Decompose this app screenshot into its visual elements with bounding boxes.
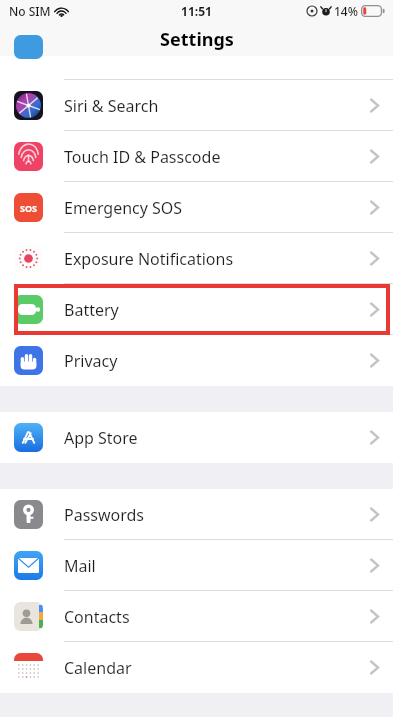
staticText: No SIM	[9, 3, 51, 19]
button[interactable]: Siri & Search	[0, 80, 393, 131]
button[interactable]: Touch ID & Passcode	[0, 131, 393, 182]
staticText: Battery	[64, 299, 370, 321]
button[interactable]: Calendar	[0, 642, 393, 693]
button[interactable]: Contacts	[0, 591, 393, 642]
button[interactable]: App Store	[0, 412, 393, 463]
staticText: Touch ID & Passcode	[64, 146, 370, 168]
button[interactable]: Passwords	[0, 489, 393, 540]
staticText: Mail	[64, 555, 370, 577]
staticText: Contacts	[64, 606, 370, 628]
staticText: Calendar	[64, 657, 370, 679]
button[interactable]: Privacy	[0, 335, 393, 386]
staticText: Passwords	[64, 504, 370, 526]
staticText: Emergency SOS	[64, 197, 370, 219]
staticText: SOS	[20, 202, 38, 214]
staticText: 11:51	[181, 3, 212, 19]
staticText: Privacy	[64, 350, 370, 372]
button[interactable]: SOS	[0, 182, 393, 233]
staticText: Exposure Notifications	[64, 248, 370, 270]
button[interactable]: Mail	[0, 540, 393, 591]
button[interactable]: Battery	[0, 284, 393, 335]
button[interactable]: Exposure Notifications	[0, 233, 393, 284]
staticText: Siri & Search	[64, 95, 370, 117]
button[interactable]	[0, 56, 393, 80]
staticText: Settings	[160, 27, 234, 52]
staticText: 14%	[334, 3, 358, 19]
staticText: App Store	[64, 427, 370, 449]
